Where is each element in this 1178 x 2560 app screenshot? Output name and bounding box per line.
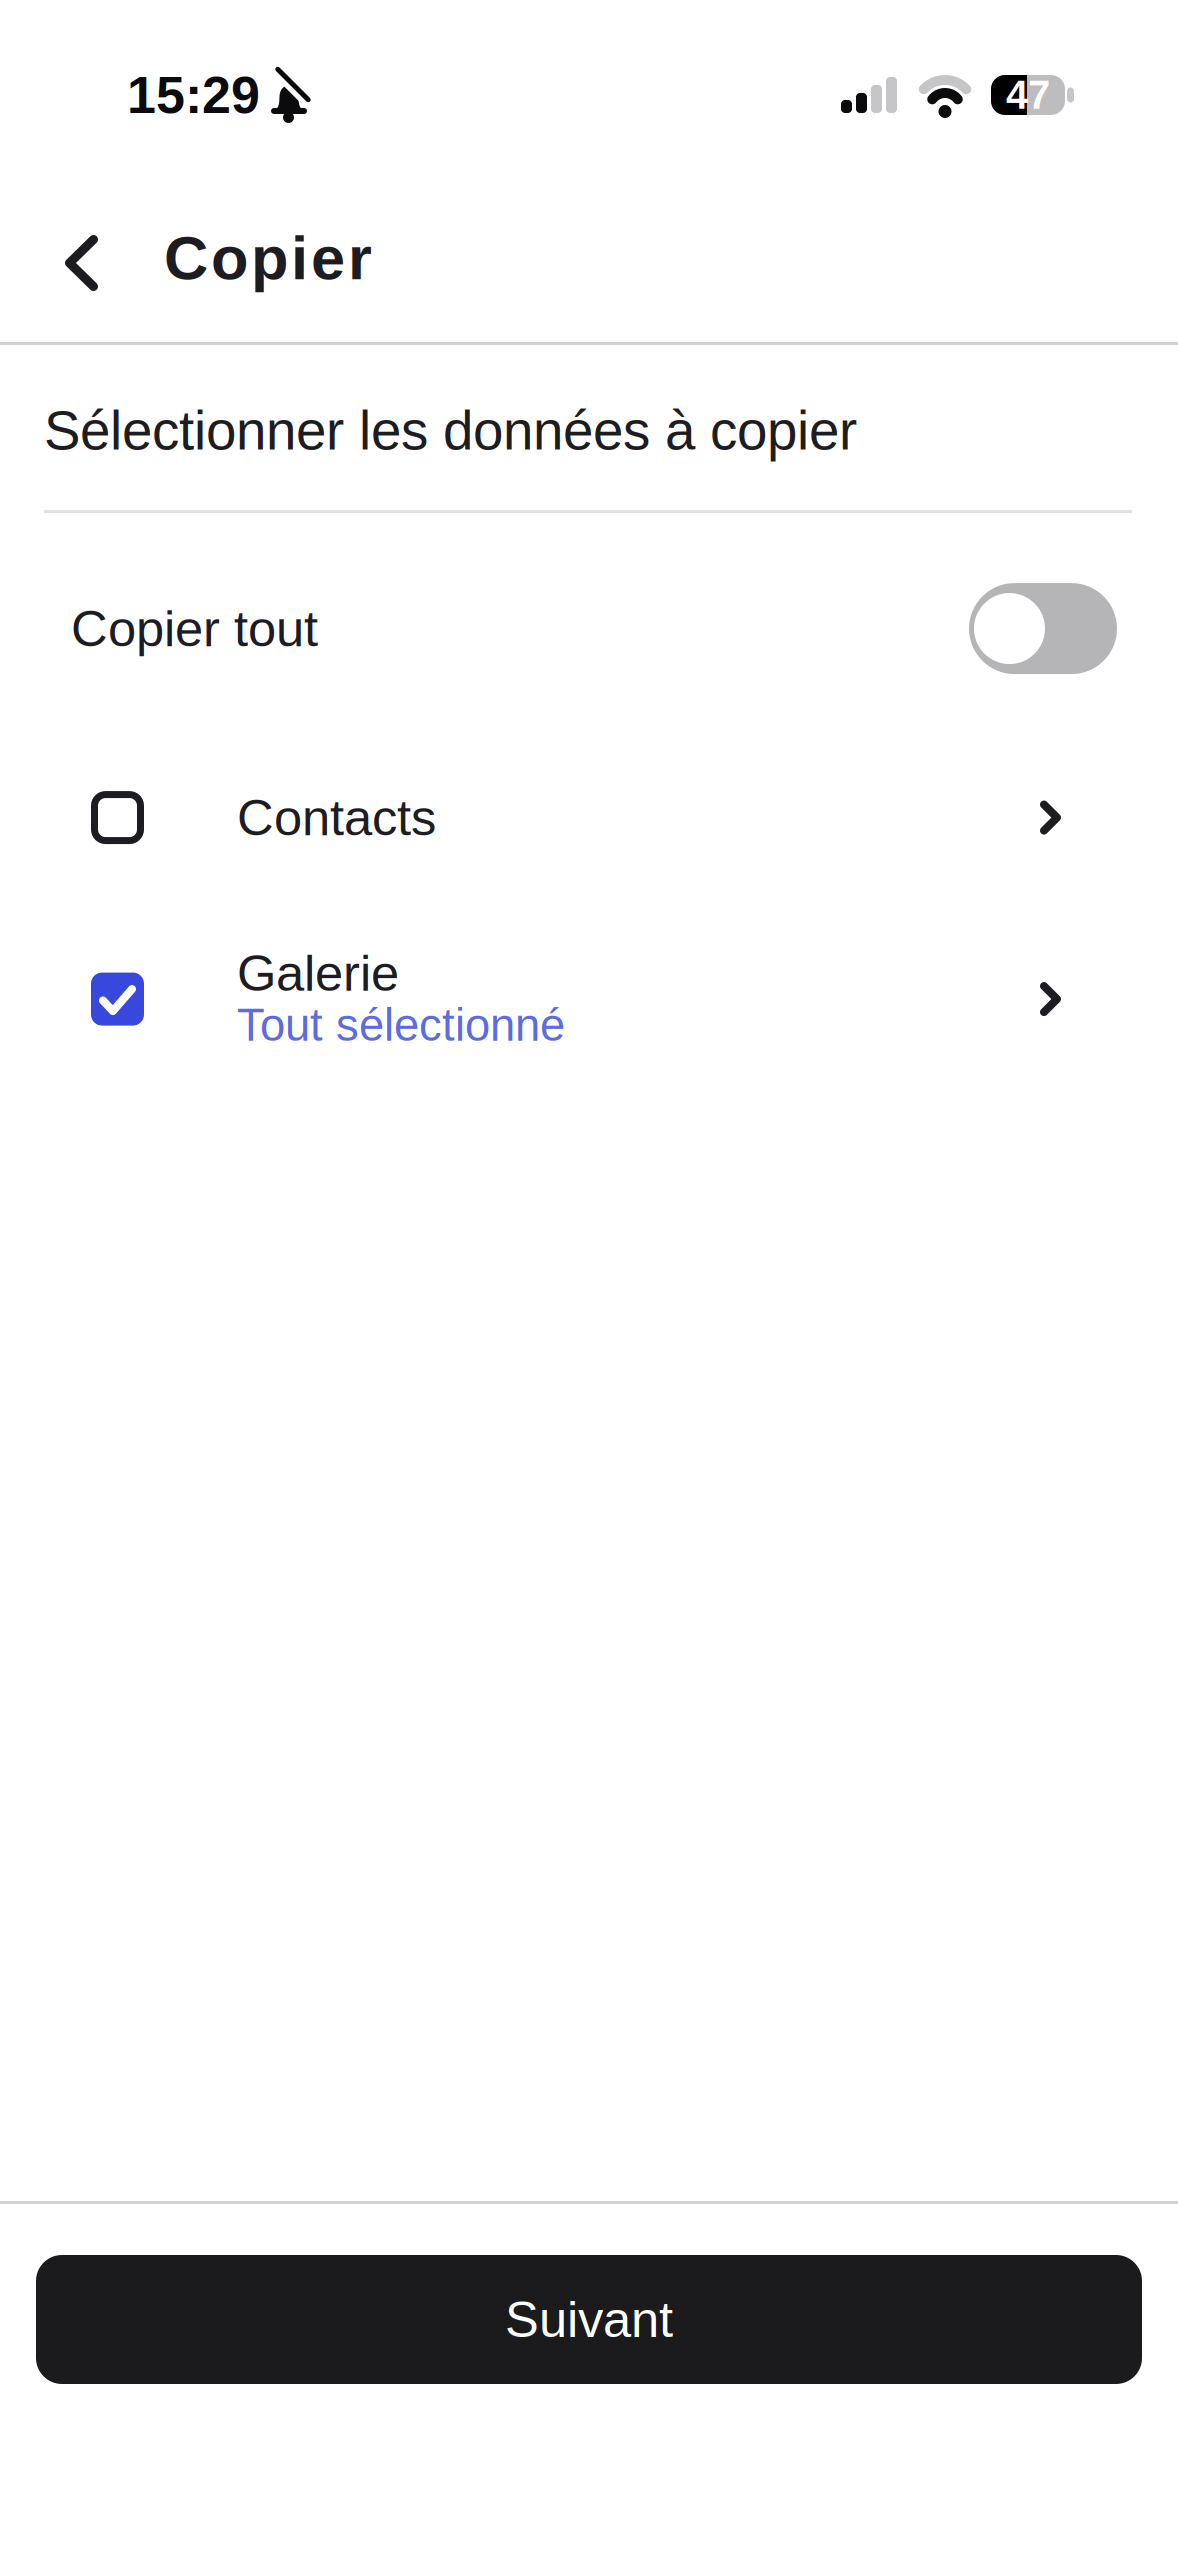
button[interactable]: Suivant (0, 2204, 1178, 2560)
staticText: Sélectionner les données à copier (44, 400, 857, 461)
staticText: Galerie (237, 945, 399, 1001)
staticText: Copier tout (71, 600, 318, 657)
staticText: Contacts (237, 789, 436, 846)
button[interactable]: Retour (0, 211, 164, 321)
staticText: 15:29 (127, 66, 260, 124)
staticText: Tout sélectionné (237, 1000, 565, 1050)
staticText: 47 (1006, 73, 1050, 117)
staticText: Suivant (505, 2291, 673, 2348)
button[interactable]: Copier tout (0, 513, 1178, 734)
button[interactable]: Contacts (0, 734, 1178, 901)
button[interactable]: Galerie (0, 901, 1178, 1097)
staticText: Copier (164, 224, 372, 292)
